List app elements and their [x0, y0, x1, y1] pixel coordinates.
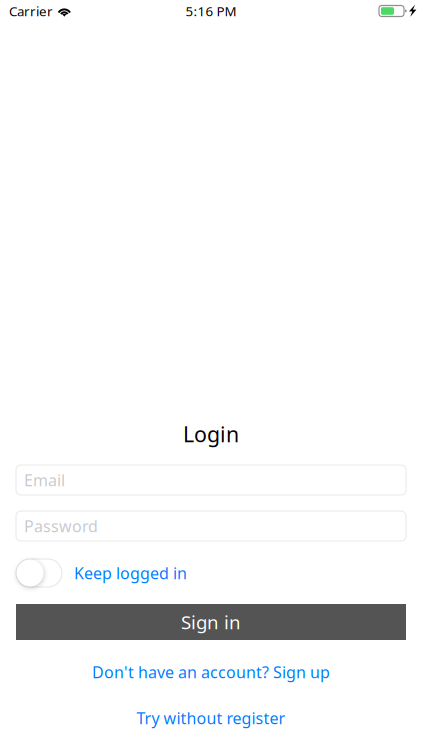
staticText: Login: [183, 420, 239, 448]
button[interactable]: Sign in: [16, 604, 406, 640]
button[interactable]: Password: [16, 511, 406, 541]
staticText: Keep logged in: [74, 562, 187, 584]
staticText: Email: [24, 469, 65, 491]
button[interactable]: Don't have an account? Sign up: [16, 658, 406, 686]
staticText: Sign in: [181, 610, 241, 634]
staticText: 5:16 PM: [185, 2, 236, 20]
button[interactable]: Keep logged in: [74, 562, 187, 584]
button[interactable]: Try without register: [16, 704, 406, 732]
staticText: Password: [24, 515, 98, 537]
button[interactable]: Keep logged in: [16, 559, 62, 587]
staticText: Don't have an account? Sign up: [92, 661, 330, 683]
staticText: Try without register: [136, 707, 285, 729]
staticText: Carrier: [9, 2, 53, 20]
button[interactable]: Email: [16, 465, 406, 495]
